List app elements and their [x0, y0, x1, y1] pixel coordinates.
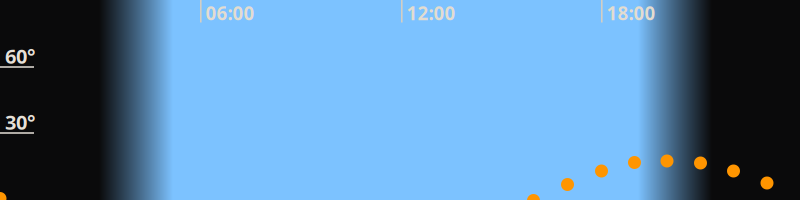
staticText: 06:00	[205, 1, 254, 25]
staticText: 60°	[5, 43, 35, 69]
staticText: 30°	[5, 109, 35, 135]
staticText: 18:00	[606, 1, 655, 25]
staticText: 12:00	[406, 1, 455, 25]
